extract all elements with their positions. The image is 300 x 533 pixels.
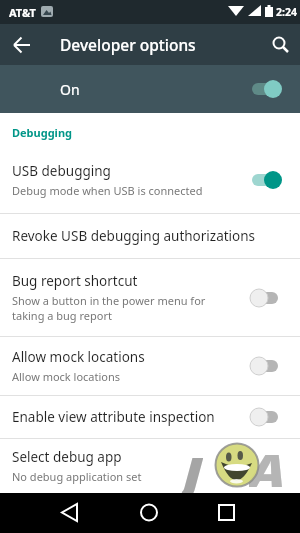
button[interactable]: Revoke USB debugging authorizations [0,214,300,258]
staticText: No debug application set [12,469,142,484]
button[interactable] [260,25,300,65]
button[interactable]: USB debugging [0,146,300,213]
staticText: Enable view attribute inspection [12,408,215,426]
staticText: AT&T [9,5,36,20]
button[interactable] [0,493,100,533]
button[interactable]: Allow mock locations [0,337,300,395]
staticText: Developer options [60,34,196,55]
button[interactable]: Select debug app [0,439,300,493]
staticText: Bug report shortcut [12,272,138,290]
staticText: Debugging [12,125,73,140]
staticText: A [249,439,286,493]
staticText: Debug mode when USB is connected [12,183,203,198]
staticText: J [182,442,203,496]
button[interactable] [200,493,300,533]
button[interactable] [0,25,40,65]
staticText: Allow mock locations [12,369,121,384]
staticText: Select debug app [12,448,122,466]
button[interactable]: Enable view attribute inspection [0,396,300,438]
button[interactable] [100,493,200,533]
staticText: On [60,80,249,99]
button[interactable]: Bug report shortcut [0,259,300,336]
staticText: Show a button in the power menu for taki… [12,293,217,323]
staticText: 2:24 [276,5,297,19]
staticText: Revoke USB debugging authorizations [12,227,256,245]
button[interactable]: On [0,65,300,113]
staticText: Allow mock locations [12,348,145,366]
staticText: USB debugging [12,162,111,180]
